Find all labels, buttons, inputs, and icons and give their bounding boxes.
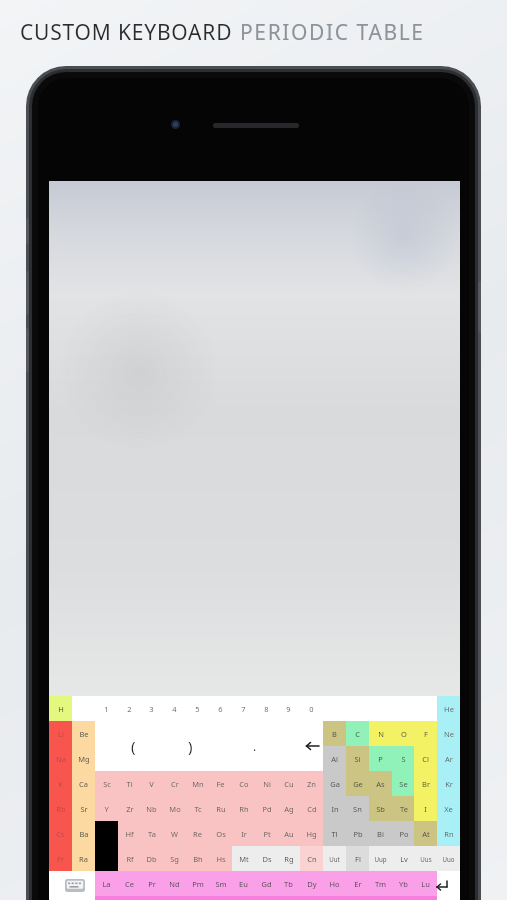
- button[interactable]: Ti: [118, 771, 141, 796]
- button[interactable]: Cd: [300, 796, 323, 821]
- button[interactable]: I: [414, 796, 437, 821]
- button[interactable]: Uuo: [437, 846, 460, 871]
- button[interactable]: Al: [323, 746, 346, 771]
- button[interactable]: Rg: [277, 846, 300, 871]
- button[interactable]: Po: [392, 821, 415, 846]
- button[interactable]: 1: [95, 696, 118, 721]
- button[interactable]: Pb: [346, 821, 369, 846]
- button[interactable]: Sc: [95, 771, 118, 796]
- button[interactable]: Cs: [49, 821, 72, 846]
- button[interactable]: Co: [232, 771, 255, 796]
- button[interactable]: Te: [392, 796, 415, 821]
- button[interactable]: Uut: [323, 846, 346, 871]
- button[interactable]: Zn: [300, 771, 323, 796]
- button[interactable]: 8: [255, 696, 278, 721]
- button[interactable]: Sb: [369, 796, 392, 821]
- button[interactable]: 6: [209, 696, 232, 721]
- button[interactable]: Backspace: [300, 721, 323, 771]
- button[interactable]: P: [369, 746, 392, 771]
- button[interactable]: La: [95, 871, 118, 896]
- button[interactable]: F: [414, 721, 437, 746]
- button[interactable]: 3: [140, 696, 163, 721]
- button[interactable]: Pm: [186, 871, 209, 896]
- button[interactable]: H: [49, 696, 72, 721]
- button[interactable]: Ne: [437, 721, 460, 746]
- button[interactable]: Ge: [346, 771, 369, 796]
- button[interactable]: Ca: [72, 771, 95, 796]
- button[interactable]: Na: [49, 746, 72, 771]
- button[interactable]: Ra: [72, 846, 95, 871]
- button[interactable]: 5: [186, 696, 209, 721]
- button[interactable]: 2: [118, 696, 141, 721]
- button[interactable]: Br: [414, 771, 437, 796]
- button[interactable]: Sn: [346, 796, 369, 821]
- button[interactable]: 0: [300, 696, 323, 721]
- button[interactable]: Enter: [428, 877, 454, 893]
- button[interactable]: Fl: [346, 846, 369, 871]
- button[interactable]: Tc: [186, 796, 209, 821]
- button[interactable]: Tb: [277, 871, 300, 896]
- button[interactable]: Ba: [72, 821, 95, 846]
- button[interactable]: Mt: [232, 846, 255, 871]
- button[interactable]: Y: [95, 796, 118, 821]
- button[interactable]: K: [49, 771, 72, 796]
- button[interactable]: S: [392, 746, 415, 771]
- button[interactable]: Yb: [392, 871, 415, 896]
- button[interactable]: In: [323, 796, 346, 821]
- button[interactable]: ): [179, 721, 202, 771]
- button[interactable]: N: [369, 721, 392, 746]
- button[interactable]: Fr: [49, 846, 72, 871]
- button[interactable]: Cn: [300, 846, 323, 871]
- button[interactable]: Hf: [118, 821, 141, 846]
- button[interactable]: Rb: [49, 796, 72, 821]
- button[interactable]: Dy: [300, 871, 323, 896]
- button[interactable]: Pd: [255, 796, 278, 821]
- button[interactable]: Rf: [118, 846, 141, 871]
- button[interactable]: Ce: [118, 871, 141, 896]
- button[interactable]: 4: [163, 696, 186, 721]
- button[interactable]: Er: [346, 871, 369, 896]
- button[interactable]: Fe: [209, 771, 232, 796]
- button[interactable]: Sm: [209, 871, 232, 896]
- button[interactable]: W: [163, 821, 186, 846]
- button[interactable]: Be: [72, 721, 95, 746]
- button[interactable]: Gd: [255, 871, 278, 896]
- button[interactable]: He: [437, 696, 460, 721]
- button[interactable]: Pr: [140, 871, 163, 896]
- button[interactable]: Rh: [232, 796, 255, 821]
- button[interactable]: Si: [346, 746, 369, 771]
- button[interactable]: Ru: [209, 796, 232, 821]
- button[interactable]: Cu: [277, 771, 300, 796]
- button[interactable]: Cl: [414, 746, 437, 771]
- button[interactable]: Ni: [255, 771, 278, 796]
- button[interactable]: At: [414, 821, 437, 846]
- button[interactable]: 7: [232, 696, 255, 721]
- button[interactable]: Lv: [392, 846, 415, 871]
- button[interactable]: Sr: [72, 796, 95, 821]
- button[interactable]: Kr: [437, 771, 460, 796]
- button[interactable]: Switch keyboard: [62, 877, 88, 893]
- button[interactable]: Db: [140, 846, 163, 871]
- button[interactable]: Hs: [209, 846, 232, 871]
- button[interactable]: Ds: [255, 846, 278, 871]
- button[interactable]: Zr: [118, 796, 141, 821]
- button[interactable]: .: [243, 721, 266, 771]
- button[interactable]: Nb: [140, 796, 163, 821]
- button[interactable]: Mn: [186, 771, 209, 796]
- button[interactable]: O: [392, 721, 415, 746]
- button[interactable]: Mg: [72, 746, 95, 771]
- button[interactable]: Ir: [232, 821, 255, 846]
- button[interactable]: Sg: [163, 846, 186, 871]
